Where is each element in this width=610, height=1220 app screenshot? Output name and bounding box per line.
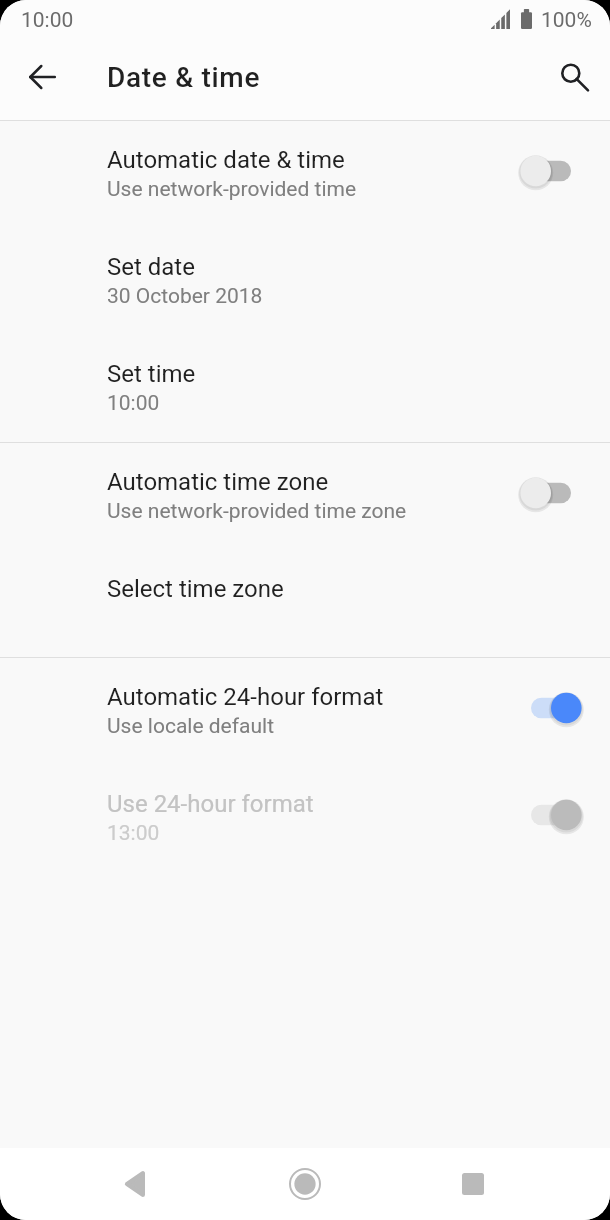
button[interactable]: Toggle Automatic 24-hour format [515, 684, 587, 732]
staticText: Set time [107, 360, 196, 388]
staticText: Use network-provided time zone [107, 499, 407, 524]
button[interactable]: Toggle Use 24-hour format [515, 791, 587, 839]
button[interactable]: Set date [0, 228, 610, 335]
button[interactable]: Toggle Automatic date & time [515, 147, 587, 195]
staticText: 13:00 [107, 821, 160, 846]
staticText: 100% [541, 8, 592, 33]
staticText: Date & time [107, 61, 261, 94]
staticText: Use network-provided time [107, 177, 357, 202]
button[interactable]: Set time [0, 335, 610, 442]
staticText: 10:00 [107, 391, 160, 416]
staticText: Automatic time zone [107, 468, 329, 496]
staticText: Automatic 24-hour format [107, 683, 384, 711]
button[interactable]: Use 24-hour format [0, 765, 610, 872]
button[interactable]: Toggle Automatic time zone [515, 469, 587, 517]
button[interactable]: Automatic time zone [0, 443, 610, 550]
staticText: Set date [107, 253, 195, 281]
button[interactable]: Navigate up [15, 50, 69, 104]
button[interactable]: Automatic date & time [0, 121, 610, 228]
staticText: Use 24-hour format [107, 790, 314, 818]
staticText: Use locale default [107, 714, 275, 739]
button[interactable]: Select time zone [0, 550, 610, 657]
button[interactable]: Automatic 24-hour format [0, 658, 610, 765]
staticText: 10:00 [21, 8, 74, 33]
button[interactable]: Search [544, 46, 598, 100]
button[interactable]: Back [102, 1152, 166, 1216]
staticText: Automatic date & time [107, 146, 345, 174]
staticText: 30 October 2018 [107, 284, 263, 309]
button[interactable]: Recent apps [441, 1152, 505, 1216]
button[interactable]: Home [273, 1152, 337, 1216]
staticText: Select time zone [107, 575, 284, 603]
